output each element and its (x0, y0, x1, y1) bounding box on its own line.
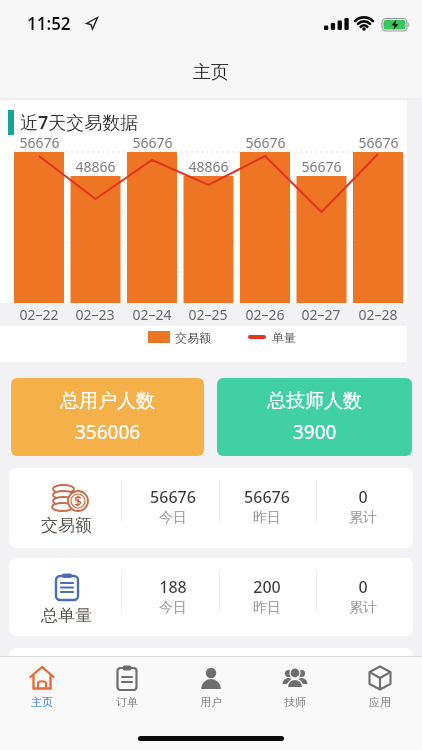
staticText: 用户 (200, 695, 222, 709)
staticText: 昨日 (253, 509, 281, 527)
staticText: 02–22 (19, 305, 59, 324)
staticText: 0 (358, 486, 368, 508)
staticText: 02–24 (132, 305, 172, 324)
staticText: 56676 (150, 486, 196, 508)
staticText: 0 (358, 576, 368, 598)
staticText: 56676 (358, 133, 399, 152)
staticText: 主页 (31, 695, 53, 709)
staticText: 02–28 (358, 305, 398, 324)
button[interactable]: 订单 (85, 657, 169, 717)
staticText: 356006 (75, 419, 141, 445)
staticText: 188 (159, 576, 187, 598)
staticText: 56676 (132, 133, 173, 152)
staticText: 56676 (19, 133, 60, 152)
staticText: 交易额 (41, 515, 92, 536)
staticText: 订单 (116, 695, 138, 709)
button[interactable]: 用户 (169, 657, 253, 717)
staticText: 昨日 (253, 599, 281, 617)
staticText: 应用 (369, 695, 391, 709)
staticText: 56676 (245, 133, 286, 152)
staticText: 02–27 (301, 305, 341, 324)
staticText: 48866 (75, 157, 116, 176)
staticText: 56676 (301, 157, 342, 176)
staticText: 3900 (293, 419, 337, 445)
staticText: 交易额 (175, 330, 211, 345)
staticText: 近7天交易数据 (20, 110, 139, 135)
staticText: 200 (253, 576, 281, 598)
staticText: 总技师人数 (267, 389, 362, 413)
staticText: 02–25 (188, 305, 228, 324)
button[interactable]: 主页 (0, 657, 84, 717)
staticText: 02–23 (75, 305, 115, 324)
staticText: 56676 (244, 486, 290, 508)
button[interactable]: 交易额 (9, 468, 413, 548)
staticText: 48866 (188, 157, 229, 176)
staticText: 主页 (193, 61, 229, 84)
button[interactable]: 技师 (253, 657, 337, 717)
staticText: 11:52 (27, 12, 71, 35)
staticText: 今日 (159, 509, 187, 527)
staticText: 今日 (159, 599, 187, 617)
staticText: 单量 (272, 330, 296, 345)
button[interactable]: 总单量 (9, 558, 413, 636)
button[interactable]: 总技师人数 (217, 378, 412, 456)
staticText: 累计 (349, 599, 377, 617)
button[interactable]: 应用 (338, 657, 422, 717)
staticText: 累计 (349, 509, 377, 527)
staticText: 技师 (284, 695, 306, 709)
staticText: 总单量 (41, 605, 92, 626)
button[interactable]: 总用户人数 (11, 378, 204, 456)
staticText: 02–26 (245, 305, 285, 324)
staticText: 总用户人数 (60, 389, 155, 413)
